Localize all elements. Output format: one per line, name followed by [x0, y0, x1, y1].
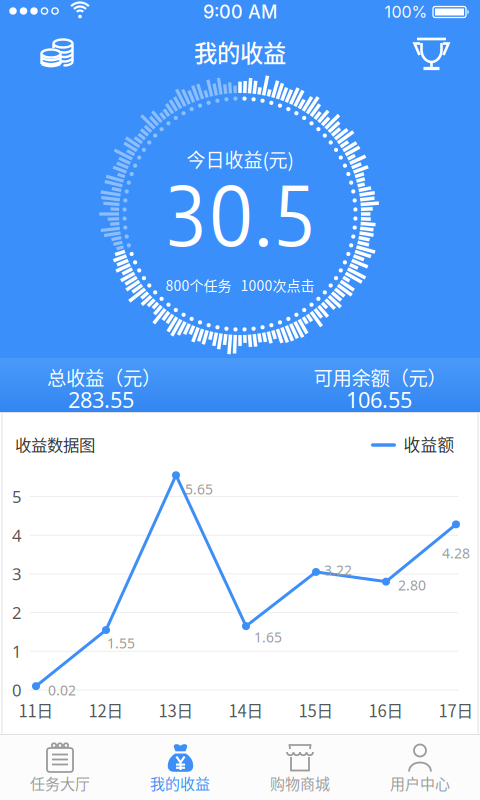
staticText: 1 [12, 640, 22, 663]
staticText: 1.55 [107, 633, 135, 653]
staticText: 2.80 [398, 575, 426, 595]
staticText: 4 [12, 524, 22, 546]
staticText: 总收益（元） [47, 363, 161, 391]
staticText: 11日 [18, 698, 53, 722]
staticText: 12日 [88, 698, 123, 722]
staticText: 2 [12, 601, 22, 624]
staticText: 5 [12, 485, 22, 508]
staticText: 5.65 [185, 479, 213, 499]
staticText: 30.5 [168, 162, 312, 264]
button[interactable] [29, 25, 85, 81]
staticText: 收益数据图 [15, 432, 95, 456]
staticText: 283.55 [68, 385, 134, 414]
staticText: 100% [384, 2, 427, 22]
staticText: 任务大厅 [30, 772, 90, 794]
staticText: 16日 [368, 698, 403, 722]
staticText: 14日 [228, 698, 263, 722]
staticText: 用户中心 [390, 772, 450, 794]
button[interactable]: 任务大厅 [0, 734, 120, 800]
staticText: 收益额 [403, 432, 454, 456]
staticText: 800个任务 1000次点击 [165, 275, 314, 295]
staticText: 我的收益 [150, 772, 210, 794]
staticText: 15日 [298, 698, 333, 722]
button[interactable]: 购物商城 [240, 734, 360, 800]
staticText: 106.55 [346, 385, 412, 414]
button[interactable]: 用户中心 [360, 734, 480, 800]
staticText: 3 [12, 562, 22, 585]
staticText: 17日 [438, 698, 473, 722]
staticText: 4.28 [442, 543, 470, 563]
staticText: 0 [12, 679, 22, 701]
button[interactable]: 我的收益 [120, 734, 240, 800]
staticText: 0.02 [48, 680, 76, 700]
staticText: 购物商城 [270, 772, 330, 794]
staticText: 9:00 AM [203, 1, 277, 23]
staticText: 3.22 [324, 560, 352, 580]
button[interactable] [403, 25, 459, 81]
staticText: 1.65 [254, 627, 282, 647]
staticText: 13日 [158, 698, 193, 722]
staticText: 我的收益 [194, 35, 286, 69]
staticText: 今日收益(元) [186, 145, 293, 173]
staticText: 可用余额（元） [313, 363, 446, 391]
